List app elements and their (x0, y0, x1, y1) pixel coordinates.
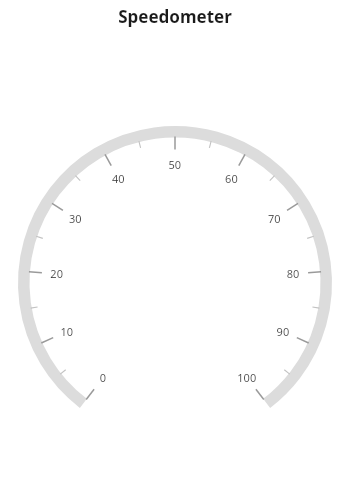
button[interactable]: Speedometer gauge, 0 to 100 (0, 0, 350, 478)
button[interactable]: Speedometer (0, 0, 350, 38)
staticText: Speedometer (118, 5, 232, 28)
